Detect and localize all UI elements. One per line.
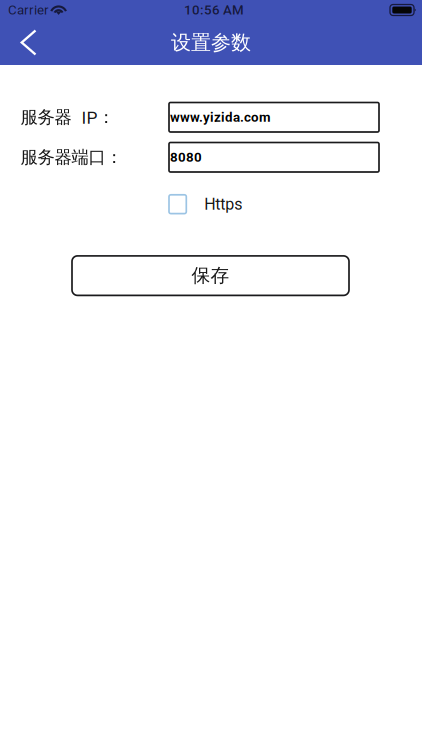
button[interactable]: Server port — [169, 142, 379, 172]
button[interactable]: Back — [0, 20, 52, 65]
staticText: 设置参数 — [171, 30, 251, 55]
staticText: Https — [204, 195, 242, 214]
staticText: www.yizida.com — [170, 109, 271, 125]
staticText: Carrier — [8, 2, 49, 18]
button[interactable]: Server IP — [169, 102, 379, 132]
staticText: 10:56 AM — [184, 2, 244, 18]
button[interactable]: 保存 — [72, 256, 349, 295]
staticText: 服务器 IP： — [20, 106, 114, 128]
staticText: 8080 — [170, 149, 202, 165]
staticText: 保存 — [191, 264, 229, 287]
button[interactable]: Https — [169, 195, 299, 214]
staticText: 服务器端口： — [20, 146, 122, 168]
